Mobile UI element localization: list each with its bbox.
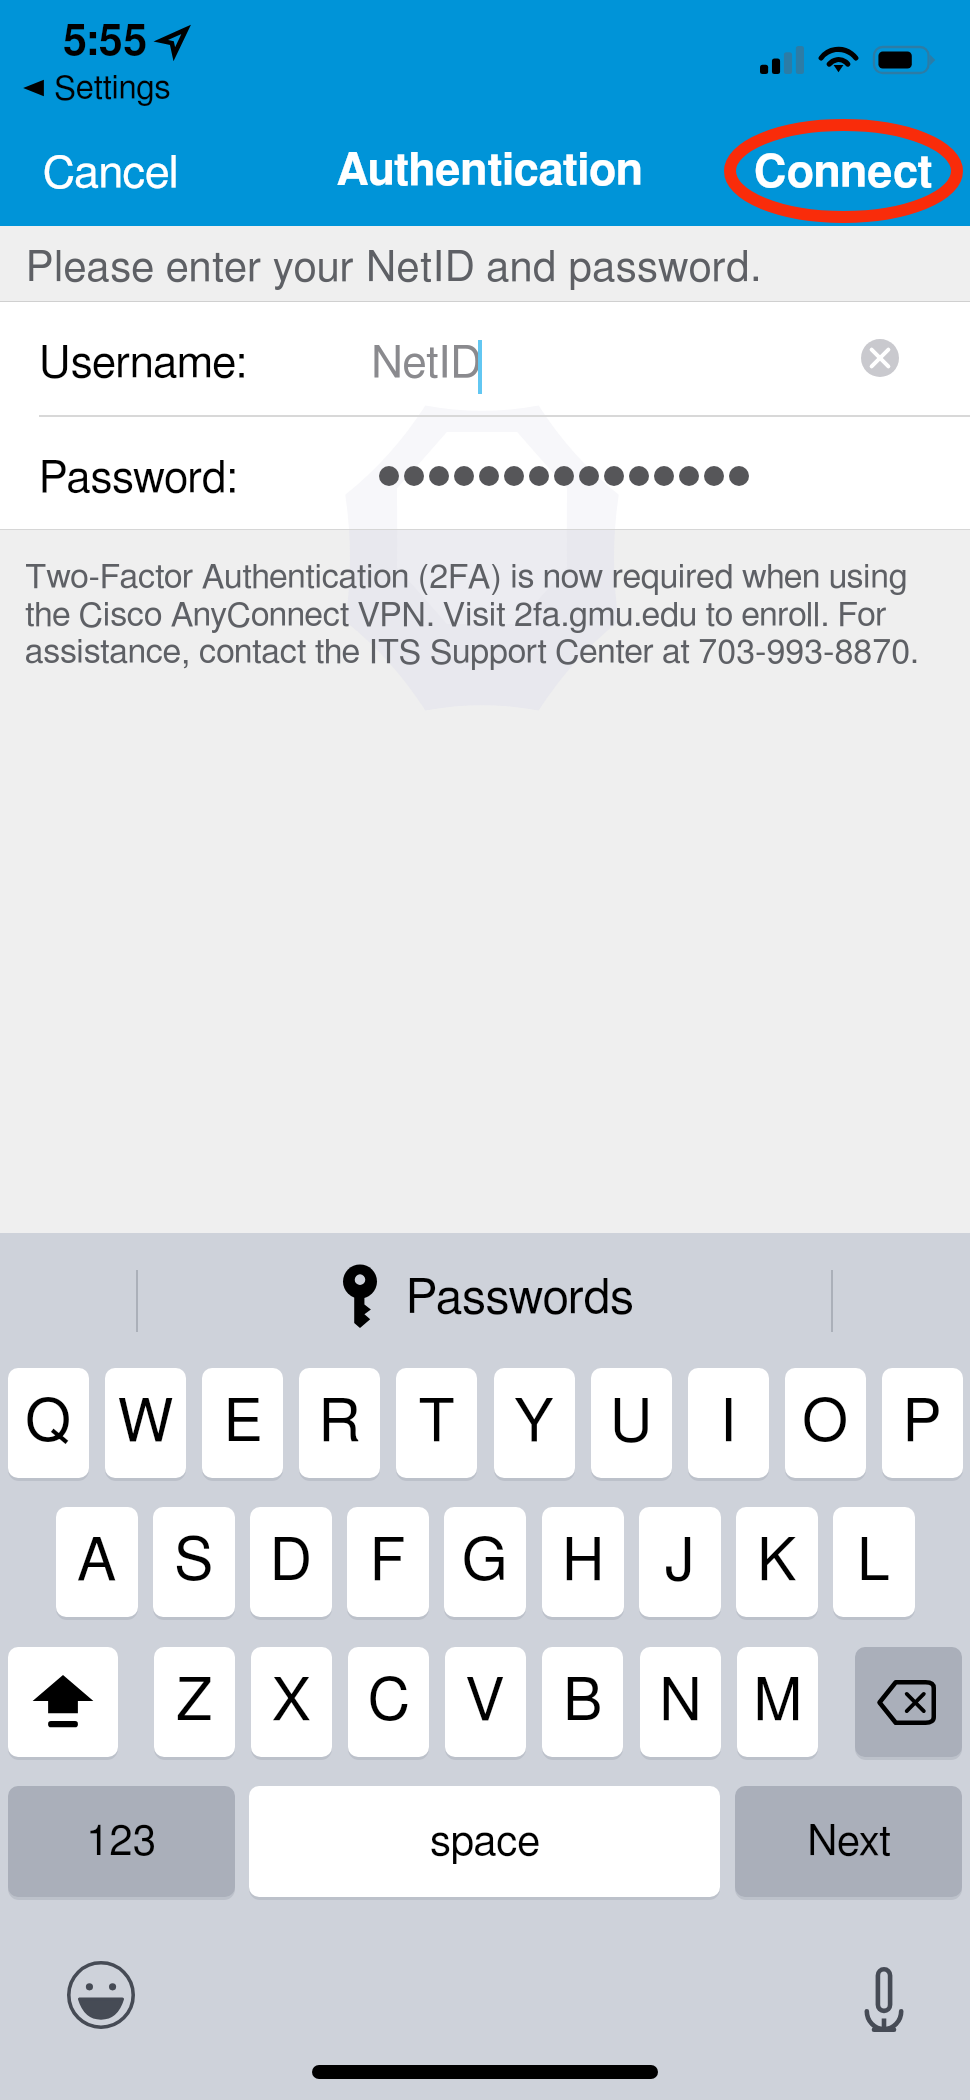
button[interactable]: T [396, 1368, 477, 1478]
staticText: R [319, 1394, 361, 1453]
button[interactable]: M [737, 1647, 818, 1757]
button[interactable]: O [785, 1368, 866, 1478]
button[interactable]: Emoji keyboard [67, 1961, 135, 2029]
button[interactable]: F [347, 1507, 429, 1617]
button[interactable]: Z [154, 1647, 235, 1757]
staticText: M [753, 1673, 803, 1732]
staticText: Y [514, 1394, 555, 1453]
button[interactable]: Cancel [15, 133, 207, 214]
staticText: Password: [39, 457, 238, 501]
staticText: 5:55 [63, 21, 148, 64]
button[interactable]: Passwords [343, 1266, 634, 1328]
staticText: P [903, 1394, 942, 1453]
button[interactable]: C [348, 1647, 429, 1757]
staticText: C [368, 1673, 410, 1732]
staticText: B [563, 1673, 603, 1732]
staticText: G [462, 1533, 508, 1592]
staticText: Z [176, 1673, 213, 1732]
staticText: W [118, 1394, 174, 1453]
button[interactable]: W [105, 1368, 186, 1478]
button[interactable]: X [251, 1647, 332, 1757]
button[interactable]: Backspace [855, 1647, 962, 1757]
staticText: Two-Factor Authentication (2FA) is now r… [25, 561, 950, 670]
staticText: K [757, 1533, 797, 1592]
staticText: E [224, 1394, 262, 1453]
button[interactable]: N [640, 1647, 721, 1757]
staticText: NetID [371, 342, 482, 386]
button[interactable]: P [882, 1368, 963, 1478]
staticText: Settings [54, 73, 171, 106]
staticText: N [659, 1673, 703, 1732]
button[interactable]: B [542, 1647, 623, 1757]
staticText: 123 [86, 1821, 157, 1863]
staticText: Connect [754, 151, 933, 196]
staticText: Username: [39, 342, 247, 386]
staticText: Q [25, 1394, 72, 1453]
staticText: H [562, 1533, 605, 1592]
staticText: A [77, 1533, 117, 1592]
button[interactable]: Dictation [864, 1967, 904, 2033]
button[interactable]: R [299, 1368, 380, 1478]
button[interactable]: 123 [8, 1786, 235, 1897]
button[interactable]: Next [735, 1786, 962, 1897]
button[interactable]: S [153, 1507, 235, 1617]
staticText: U [610, 1394, 653, 1453]
button[interactable]: Settings [16, 67, 177, 112]
staticText: Passwords [406, 1275, 634, 1323]
button[interactable]: K [736, 1507, 818, 1617]
button[interactable]: D [250, 1507, 332, 1617]
button[interactable]: V [445, 1647, 526, 1757]
staticText: T [418, 1394, 456, 1453]
button[interactable]: J [639, 1507, 721, 1617]
staticText: D [270, 1533, 312, 1592]
staticText: O [802, 1394, 849, 1453]
button[interactable]: Connect [726, 133, 961, 214]
staticText: V [466, 1673, 505, 1732]
staticText: Next [807, 1821, 891, 1863]
button[interactable]: Shift [8, 1647, 118, 1757]
button[interactable]: U [591, 1368, 672, 1478]
button[interactable]: A [56, 1507, 138, 1617]
staticText: F [370, 1533, 406, 1592]
staticText: X [272, 1673, 311, 1732]
staticText: space [430, 1821, 540, 1863]
staticText: Authentication [337, 149, 644, 194]
staticText: L [857, 1533, 891, 1592]
button[interactable]: E [202, 1368, 283, 1478]
button[interactable]: Clear text [861, 339, 899, 377]
staticText: J [664, 1533, 696, 1592]
staticText: S [174, 1533, 214, 1592]
button[interactable]: L [833, 1507, 915, 1617]
button[interactable]: Y [494, 1368, 575, 1478]
button[interactable]: H [542, 1507, 624, 1617]
staticText: I [720, 1394, 737, 1453]
button[interactable]: Q [8, 1368, 89, 1478]
staticText: Please enter your NetID and password. [26, 247, 762, 289]
button[interactable]: G [444, 1507, 526, 1617]
button[interactable]: I [688, 1368, 769, 1478]
staticText: Cancel [43, 151, 179, 196]
button[interactable]: space [249, 1786, 720, 1897]
